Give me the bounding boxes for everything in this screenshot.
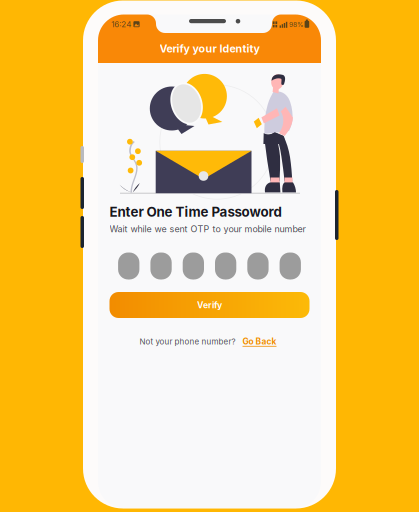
button[interactable]: Verify bbox=[109, 292, 309, 318]
staticText: Not your phone number? bbox=[139, 337, 235, 346]
button[interactable]: Verify your Identity bbox=[98, 34, 321, 62]
staticText: Wait while we sent OTP to your mobile nu… bbox=[109, 224, 305, 234]
staticText: 98% bbox=[289, 20, 304, 29]
staticText: 16:24 bbox=[111, 20, 131, 29]
staticText: Verify bbox=[197, 300, 222, 310]
button[interactable]: Go Back bbox=[242, 336, 276, 347]
staticText: Verify your Identity bbox=[159, 42, 259, 55]
staticText: Go Back bbox=[242, 336, 276, 347]
staticText: Enter One Time Passoword bbox=[109, 204, 281, 220]
